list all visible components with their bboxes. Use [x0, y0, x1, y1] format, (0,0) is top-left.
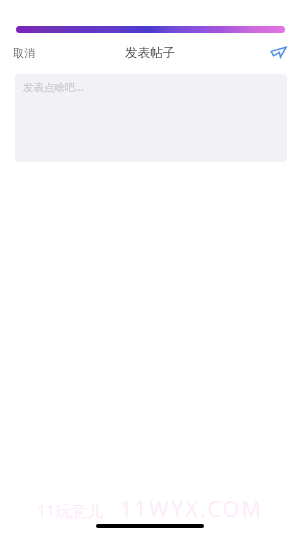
- button[interactable]: 发表点啥吧...: [15, 74, 287, 162]
- button[interactable]: Send: [261, 44, 300, 63]
- staticText: 发表帖子: [125, 45, 175, 61]
- button[interactable]: 取消: [0, 41, 48, 65]
- staticText: 取消: [13, 46, 35, 60]
- staticText: 发表点啥吧...: [23, 80, 84, 94]
- staticText: 11玩意儿 · 11WYX.COM: [0, 495, 300, 524]
